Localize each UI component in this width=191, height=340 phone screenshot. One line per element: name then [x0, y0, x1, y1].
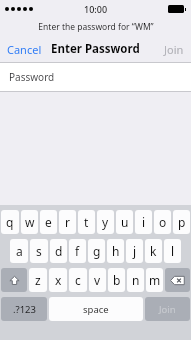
button[interactable]: q — [1, 210, 19, 234]
staticText: Join — [159, 303, 176, 316]
button[interactable]: o — [154, 210, 171, 234]
staticText: t — [84, 214, 89, 230]
button[interactable]: f — [69, 239, 86, 263]
button[interactable]: v — [89, 268, 106, 292]
button[interactable]: r — [59, 210, 76, 234]
staticText: Enter Password — [51, 41, 140, 57]
staticText: e — [45, 214, 52, 230]
staticText: x — [55, 272, 62, 288]
staticText: 10:00 — [84, 3, 108, 15]
staticText: h — [112, 243, 120, 259]
staticText: z — [35, 272, 41, 288]
staticText: space — [83, 303, 109, 316]
staticText: Password — [9, 70, 55, 84]
staticText: y — [102, 214, 109, 230]
button[interactable]: i — [135, 210, 152, 234]
button[interactable]: e — [40, 210, 57, 234]
button[interactable]: space — [49, 297, 143, 321]
staticText: d — [55, 243, 63, 259]
button[interactable]: x — [49, 268, 67, 292]
staticText: o — [159, 214, 167, 230]
staticText: m — [149, 272, 161, 288]
staticText: n — [132, 272, 140, 288]
staticText: Cancel — [7, 42, 42, 57]
staticText: f — [75, 243, 80, 259]
button[interactable]: Join — [145, 297, 190, 321]
button[interactable]: d — [50, 239, 67, 263]
button[interactable]: h — [107, 239, 124, 263]
button[interactable]: u — [116, 210, 133, 234]
staticText: k — [150, 243, 157, 259]
button[interactable]: Shift — [1, 268, 27, 292]
staticText: j — [133, 243, 137, 259]
button[interactable]: t — [78, 210, 95, 234]
staticText: Enter the password for “WM” — [38, 21, 154, 33]
button[interactable]: z — [29, 268, 47, 292]
staticText: q — [6, 214, 14, 230]
staticText: w — [25, 214, 35, 230]
button[interactable]: n — [127, 268, 144, 292]
button[interactable]: Join — [157, 36, 191, 62]
staticText: u — [121, 214, 129, 230]
staticText: p — [178, 214, 186, 230]
button[interactable]: Password — [0, 63, 191, 91]
staticText: v — [94, 272, 101, 288]
button[interactable]: l — [164, 239, 181, 263]
button[interactable]: k — [145, 239, 162, 263]
button[interactable]: w — [21, 210, 38, 234]
button[interactable]: p — [173, 210, 190, 234]
staticText: Join — [164, 42, 184, 57]
staticText: .?123 — [13, 303, 36, 316]
staticText: b — [113, 272, 121, 288]
button[interactable]: m — [146, 268, 163, 292]
button[interactable]: j — [126, 239, 143, 263]
button[interactable]: Cancel — [0, 36, 49, 62]
button[interactable]: .?123 — [1, 297, 47, 321]
staticText: c — [75, 272, 81, 288]
button[interactable]: s — [30, 239, 48, 263]
button[interactable]: g — [88, 239, 105, 263]
button[interactable]: b — [108, 268, 125, 292]
button[interactable]: y — [97, 210, 114, 234]
button[interactable]: c — [69, 268, 87, 292]
staticText: s — [36, 243, 42, 259]
button[interactable]: a — [10, 239, 28, 263]
staticText: r — [65, 214, 70, 230]
staticText: i — [142, 214, 146, 230]
button[interactable]: Backspace — [165, 268, 190, 292]
staticText: g — [93, 243, 101, 259]
staticText: l — [171, 243, 175, 259]
staticText: a — [16, 243, 23, 259]
